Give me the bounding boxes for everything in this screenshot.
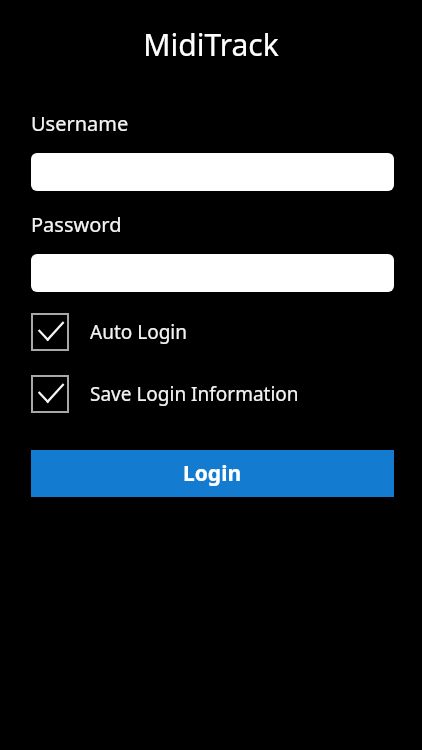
button[interactable]	[31, 153, 394, 191]
other: Save Login Information	[31, 375, 69, 413]
button[interactable]	[31, 254, 394, 292]
button[interactable]: Save Login Information	[31, 375, 394, 413]
staticText: Username	[31, 110, 129, 137]
other: Auto Login	[31, 313, 69, 351]
staticText: Auto Login	[90, 319, 187, 345]
staticText: MidiTrack	[0, 24, 422, 65]
button[interactable]: Login	[31, 450, 394, 497]
staticText: Password	[31, 211, 122, 238]
button[interactable]: Auto Login	[31, 313, 394, 351]
staticText: Save Login Information	[90, 381, 299, 407]
staticText: Login	[183, 459, 242, 488]
